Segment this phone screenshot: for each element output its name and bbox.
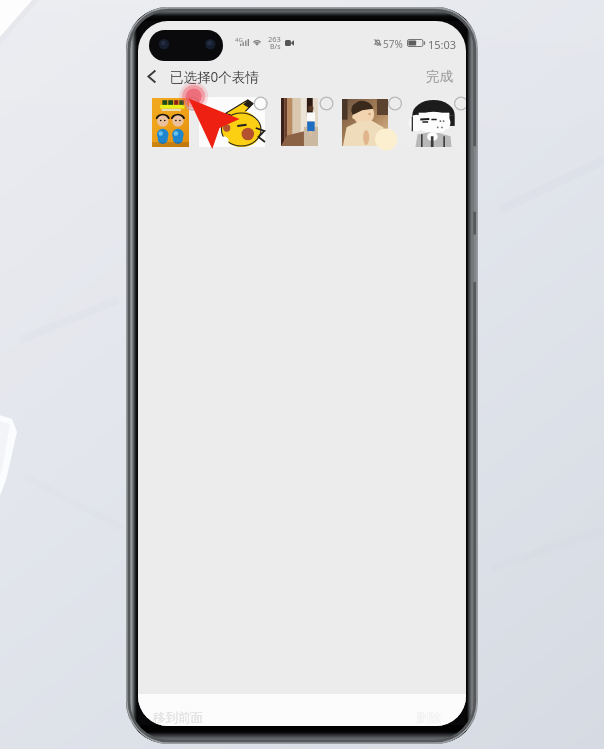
button[interactable] — [281, 98, 318, 146]
button[interactable] — [342, 99, 388, 146]
button[interactable]: 移到前面 — [146, 697, 212, 723]
button[interactable]: Back — [142, 63, 168, 91]
button[interactable]: 完成 — [418, 63, 462, 91]
button[interactable] — [407, 98, 460, 147]
button[interactable]: 删除 — [409, 697, 447, 723]
button[interactable] — [199, 97, 265, 147]
staticText: 57% — [383, 37, 403, 51]
button[interactable] — [152, 98, 189, 147]
staticText: 15:03 — [428, 37, 457, 52]
staticText: 263 — [268, 34, 281, 44]
staticText: 完成 — [426, 68, 453, 85]
staticText: 已选择0个表情 — [170, 68, 259, 86]
staticText: 删除 — [416, 710, 441, 726]
staticText: B/s — [270, 42, 281, 52]
staticText: 4G — [235, 36, 243, 44]
staticText: 移到前面 — [153, 710, 203, 726]
